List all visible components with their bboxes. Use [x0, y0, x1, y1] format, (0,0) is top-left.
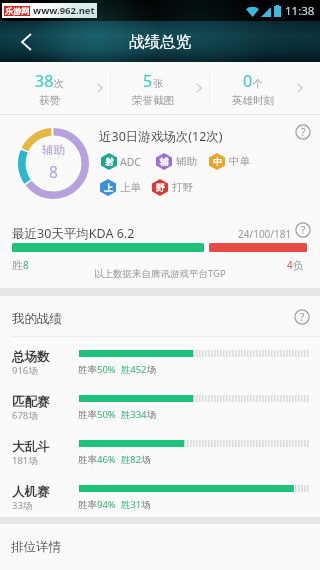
button[interactable]: Help [295, 124, 311, 140]
staticText: 辅助 [176, 155, 197, 168]
staticText: 个 [253, 77, 263, 90]
button[interactable]: 大乱斗 [0, 427, 320, 472]
staticText: 最近30天平均KDA 6.2 [12, 225, 135, 242]
staticText: 8 [23, 258, 29, 272]
button[interactable]: 38 [0, 62, 110, 115]
staticText: 大乱斗 [12, 439, 50, 455]
staticText: 英雄时刻 [232, 94, 274, 107]
button[interactable]: 匹配赛 [0, 382, 320, 427]
staticText: 上单 [120, 181, 141, 194]
button[interactable]: Back [5, 21, 46, 62]
staticText: 打野 [172, 181, 193, 194]
staticText: 次 [54, 77, 64, 90]
staticText: 辅助 [42, 143, 65, 157]
staticText: 上 [104, 182, 113, 193]
staticText: 野 [156, 182, 165, 193]
staticText: 荣誉截图 [132, 94, 174, 107]
button[interactable]: 排位详情 [0, 524, 320, 570]
staticText: 我的战绩 [12, 311, 62, 327]
staticText: 4 [287, 258, 293, 272]
staticText: ? [301, 223, 306, 237]
staticText: 人机赛 [12, 484, 50, 500]
staticText: 战绩总览 [129, 32, 191, 52]
staticText: 负 [293, 259, 304, 272]
staticText: ? [300, 310, 305, 324]
staticText: 678场 [12, 409, 38, 422]
staticText: 24/100/181 [238, 227, 292, 241]
button[interactable]: Help [294, 309, 310, 325]
staticText: 33场 [12, 499, 33, 512]
staticText: 181场 [12, 454, 38, 467]
button[interactable]: 0 [209, 62, 320, 115]
staticText: 胜率94% 胜31场 [78, 498, 151, 511]
staticText: 射 [105, 156, 114, 167]
staticText: 乐游网 [5, 6, 29, 16]
staticText: 胜率50% 胜334场 [78, 408, 157, 421]
staticText: ADC [120, 155, 142, 169]
staticText: 获赞 [39, 94, 60, 107]
staticText: 11:38 [285, 3, 315, 19]
staticText: 胜率46% 胜82场 [78, 453, 151, 466]
staticText: ? [301, 125, 306, 139]
staticText: 匹配赛 [12, 394, 50, 410]
staticText: www.962.net [33, 4, 95, 17]
staticText: 8 [49, 161, 58, 182]
button[interactable]: 5 [110, 62, 209, 115]
staticText: 胜 [12, 259, 23, 272]
staticText: 0 [243, 70, 253, 92]
staticText: 辅 [160, 156, 169, 167]
staticText: 近30日游戏场次(12次) [99, 128, 223, 145]
staticText: 张 [153, 77, 163, 90]
staticText: 5 [143, 70, 153, 92]
staticText: 总场数 [12, 349, 50, 365]
button[interactable]: 人机赛 [0, 472, 320, 517]
staticText: 38 [35, 70, 54, 92]
staticText: 以上数据来自腾讯游戏平台TGP [94, 267, 226, 280]
staticText: 916场 [12, 364, 38, 377]
button[interactable]: 总场数 [0, 337, 320, 382]
staticText: 中单 [229, 155, 250, 168]
button[interactable]: Help [295, 222, 311, 238]
staticText: 排位详情 [11, 539, 61, 555]
staticText: 中 [213, 156, 222, 167]
staticText: 胜率50% 胜452场 [78, 363, 157, 376]
